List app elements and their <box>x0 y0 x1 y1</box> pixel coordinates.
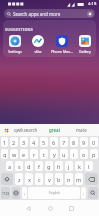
button[interactable]: a <box>6 161 13 171</box>
button[interactable]: vlite <box>26 35 49 54</box>
other: Change language <box>13 190 19 196</box>
button[interactable]: y <box>50 149 58 159</box>
button[interactable]: 3 <box>20 137 28 147</box>
button[interactable]: Gallery <box>73 35 96 54</box>
button[interactable]: 9 <box>80 137 88 147</box>
button[interactable]: r <box>30 149 38 159</box>
staticText: ?123 <box>2 191 10 196</box>
button[interactable]: z <box>15 173 23 185</box>
button[interactable]: Change language <box>12 187 20 199</box>
staticText: r <box>33 151 36 158</box>
staticText: d <box>27 163 31 170</box>
button[interactable]: c <box>35 173 43 185</box>
button[interactable]: x <box>25 173 33 185</box>
staticText: l <box>88 163 90 170</box>
staticText: English <box>49 191 60 195</box>
staticText: 9 <box>82 139 86 146</box>
button[interactable]: great <box>41 124 68 136</box>
staticText: q <box>3 151 7 158</box>
staticText: 6 <box>52 139 56 146</box>
staticText: qwiksearch <box>14 127 38 133</box>
button[interactable]: q <box>1 149 8 159</box>
staticText: 5 <box>42 139 46 146</box>
staticText: great <box>49 127 61 133</box>
button[interactable]: w <box>10 149 18 159</box>
button[interactable]: , <box>22 187 27 199</box>
other: Search <box>90 190 96 196</box>
staticText: 2 <box>12 139 16 146</box>
button[interactable]: Voice search <box>87 11 93 17</box>
button[interactable]: m <box>75 173 83 185</box>
button[interactable]: t <box>40 149 48 159</box>
button[interactable]: i <box>70 149 78 159</box>
button[interactable]: Search apps and more <box>4 9 95 18</box>
button[interactable]: 5 <box>40 137 48 147</box>
button[interactable]: 4 <box>30 137 38 147</box>
button[interactable]: n <box>65 173 73 185</box>
staticText: t <box>43 151 45 158</box>
staticText: c <box>38 176 41 183</box>
staticText: g <box>47 163 51 170</box>
staticText: h <box>57 163 61 170</box>
button[interactable]: English <box>28 187 80 199</box>
staticText: y <box>53 151 56 158</box>
button[interactable]: g <box>45 161 53 171</box>
button[interactable]: s <box>15 161 23 171</box>
button[interactable]: mate <box>68 124 95 136</box>
staticText: 4:18 <box>88 1 97 7</box>
button[interactable]: p <box>90 149 98 159</box>
button[interactable]: 2 <box>10 137 18 147</box>
button[interactable]: Recents <box>64 201 78 215</box>
button[interactable]: Shift <box>1 173 13 185</box>
button[interactable]: Phone Mas... <box>50 35 73 54</box>
button[interactable]: o <box>80 149 88 159</box>
staticText: m <box>76 176 82 183</box>
button[interactable]: Search <box>88 187 98 199</box>
button[interactable]: Home <box>43 201 57 215</box>
button[interactable]: f <box>35 161 43 171</box>
button[interactable]: 8 <box>70 137 78 147</box>
staticText: Gallery <box>79 49 91 54</box>
staticText: Search apps and more <box>13 11 61 17</box>
staticText: 1 <box>3 139 7 146</box>
button[interactable]: Backspace <box>85 173 98 185</box>
button[interactable]: e <box>20 149 28 159</box>
staticText: 4 <box>32 139 36 146</box>
button[interactable]: u <box>60 149 68 159</box>
button[interactable]: ?123 <box>1 187 10 199</box>
staticText: z <box>18 176 21 183</box>
staticText: Settings <box>8 49 22 54</box>
button[interactable]: b <box>55 173 63 185</box>
staticText: b <box>57 176 61 183</box>
button[interactable]: h <box>55 161 63 171</box>
staticText: Phone Mas... <box>51 49 73 54</box>
staticText: n <box>67 176 71 183</box>
button[interactable]: 6 <box>50 137 58 147</box>
button[interactable]: l <box>85 161 93 171</box>
button[interactable]: Back <box>21 201 35 215</box>
button[interactable]: k <box>75 161 83 171</box>
staticText: i <box>73 151 75 158</box>
staticText: a <box>8 163 12 170</box>
button[interactable]: 1 <box>1 137 8 147</box>
staticText: , <box>24 190 26 196</box>
staticText: 8 <box>72 139 76 146</box>
staticText: x <box>28 176 31 183</box>
staticText: . <box>83 190 85 196</box>
button[interactable]: j <box>65 161 73 171</box>
staticText: mate <box>76 127 87 133</box>
button[interactable]: v <box>45 173 53 185</box>
button[interactable]: qwiksearch <box>10 124 41 136</box>
button[interactable]: Settings <box>3 35 26 54</box>
staticText: 7 <box>62 139 66 146</box>
button[interactable]: Gboard <box>4 128 9 133</box>
staticText: s <box>18 163 21 170</box>
staticText: p <box>92 151 96 158</box>
staticText: 0 <box>92 139 96 146</box>
staticText: u <box>62 151 66 158</box>
button[interactable]: d <box>25 161 33 171</box>
button[interactable]: 7 <box>60 137 68 147</box>
staticText: 3 <box>22 139 26 146</box>
button[interactable]: . <box>81 187 86 199</box>
button[interactable]: 0 <box>90 137 98 147</box>
